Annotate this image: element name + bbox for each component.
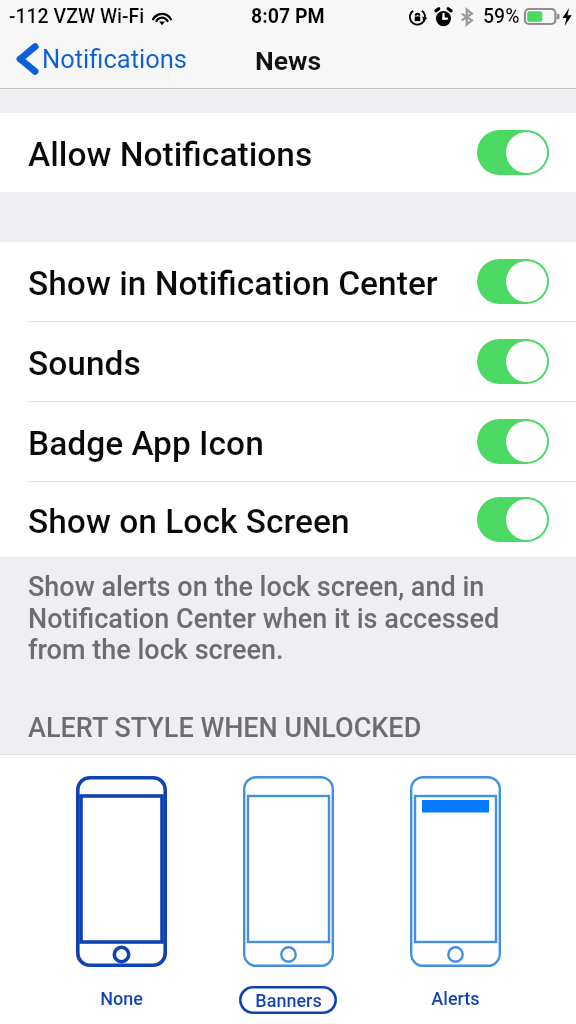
button[interactable]: Banners [243, 776, 334, 967]
button[interactable]: Sounds [0, 322, 576, 401]
staticText: News [255, 45, 322, 76]
button[interactable]: Show on Lock Screen [0, 482, 576, 557]
button[interactable]: Notifications [0, 41, 199, 80]
staticText: Show in Notification Center [28, 264, 438, 303]
button[interactable]: Allow Notifications [0, 113, 576, 192]
staticText: Show alerts on the lock screen, and in N… [28, 571, 528, 665]
staticText: Show on Lock Screen [28, 502, 350, 541]
staticText: Badge App Icon [28, 424, 264, 463]
staticText: Notifications [42, 44, 187, 74]
button[interactable]: Toggle on [477, 130, 549, 175]
staticText: Allow Notifications [28, 135, 313, 174]
staticText: Banners [255, 990, 322, 1011]
button[interactable]: Badge App Icon [0, 402, 576, 481]
button[interactable]: Toggle on [477, 259, 549, 304]
staticText: -112 VZW Wi-Fi [9, 5, 145, 28]
button[interactable]: Alerts [410, 776, 501, 967]
button[interactable]: None [76, 776, 167, 967]
button[interactable]: Toggle on [477, 497, 549, 542]
staticText: 8:07 PM [251, 5, 325, 28]
button[interactable]: Toggle on [477, 419, 549, 464]
button[interactable]: Show in Notification Center [0, 242, 576, 321]
button[interactable]: Banners [239, 986, 337, 1014]
button[interactable]: Alerts [431, 988, 480, 1009]
staticText: Sounds [28, 344, 141, 383]
staticText: 59% [483, 5, 520, 28]
staticText: ALERT STYLE WHEN UNLOCKED [28, 712, 422, 744]
button[interactable]: Toggle on [477, 339, 549, 384]
button[interactable]: None [100, 988, 143, 1009]
